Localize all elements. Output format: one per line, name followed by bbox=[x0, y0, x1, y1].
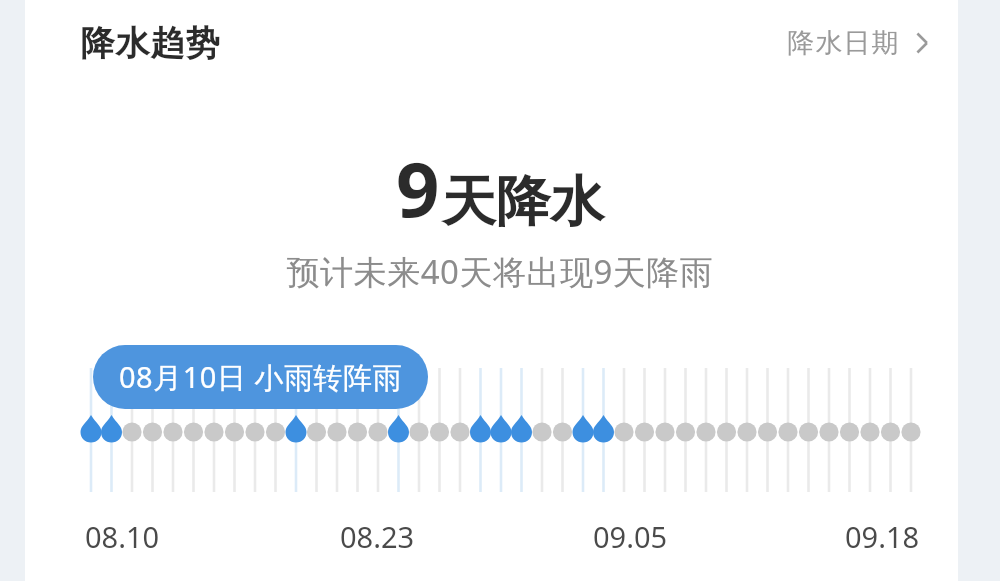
staticText: 降水趋势 bbox=[80, 22, 220, 65]
staticText: 预计未来40天将出现9天降雨 bbox=[0, 249, 1000, 294]
staticText: 天降水 bbox=[442, 168, 604, 236]
staticText: 09.18 bbox=[845, 517, 920, 556]
staticText: 降水日期 bbox=[787, 26, 899, 60]
button[interactable]: 降水日期 bbox=[785, 16, 932, 70]
staticText: 08.23 bbox=[340, 517, 415, 556]
staticText: 9 bbox=[396, 136, 440, 240]
staticText: 08.10 bbox=[85, 517, 160, 556]
staticText: 09.05 bbox=[593, 517, 668, 556]
button[interactable]: 08月10日 小雨转阵雨 bbox=[93, 345, 428, 409]
staticText: 08月10日 小雨转阵雨 bbox=[119, 357, 402, 397]
button[interactable]: Precipitation trend chart bbox=[0, 0, 1000, 581]
